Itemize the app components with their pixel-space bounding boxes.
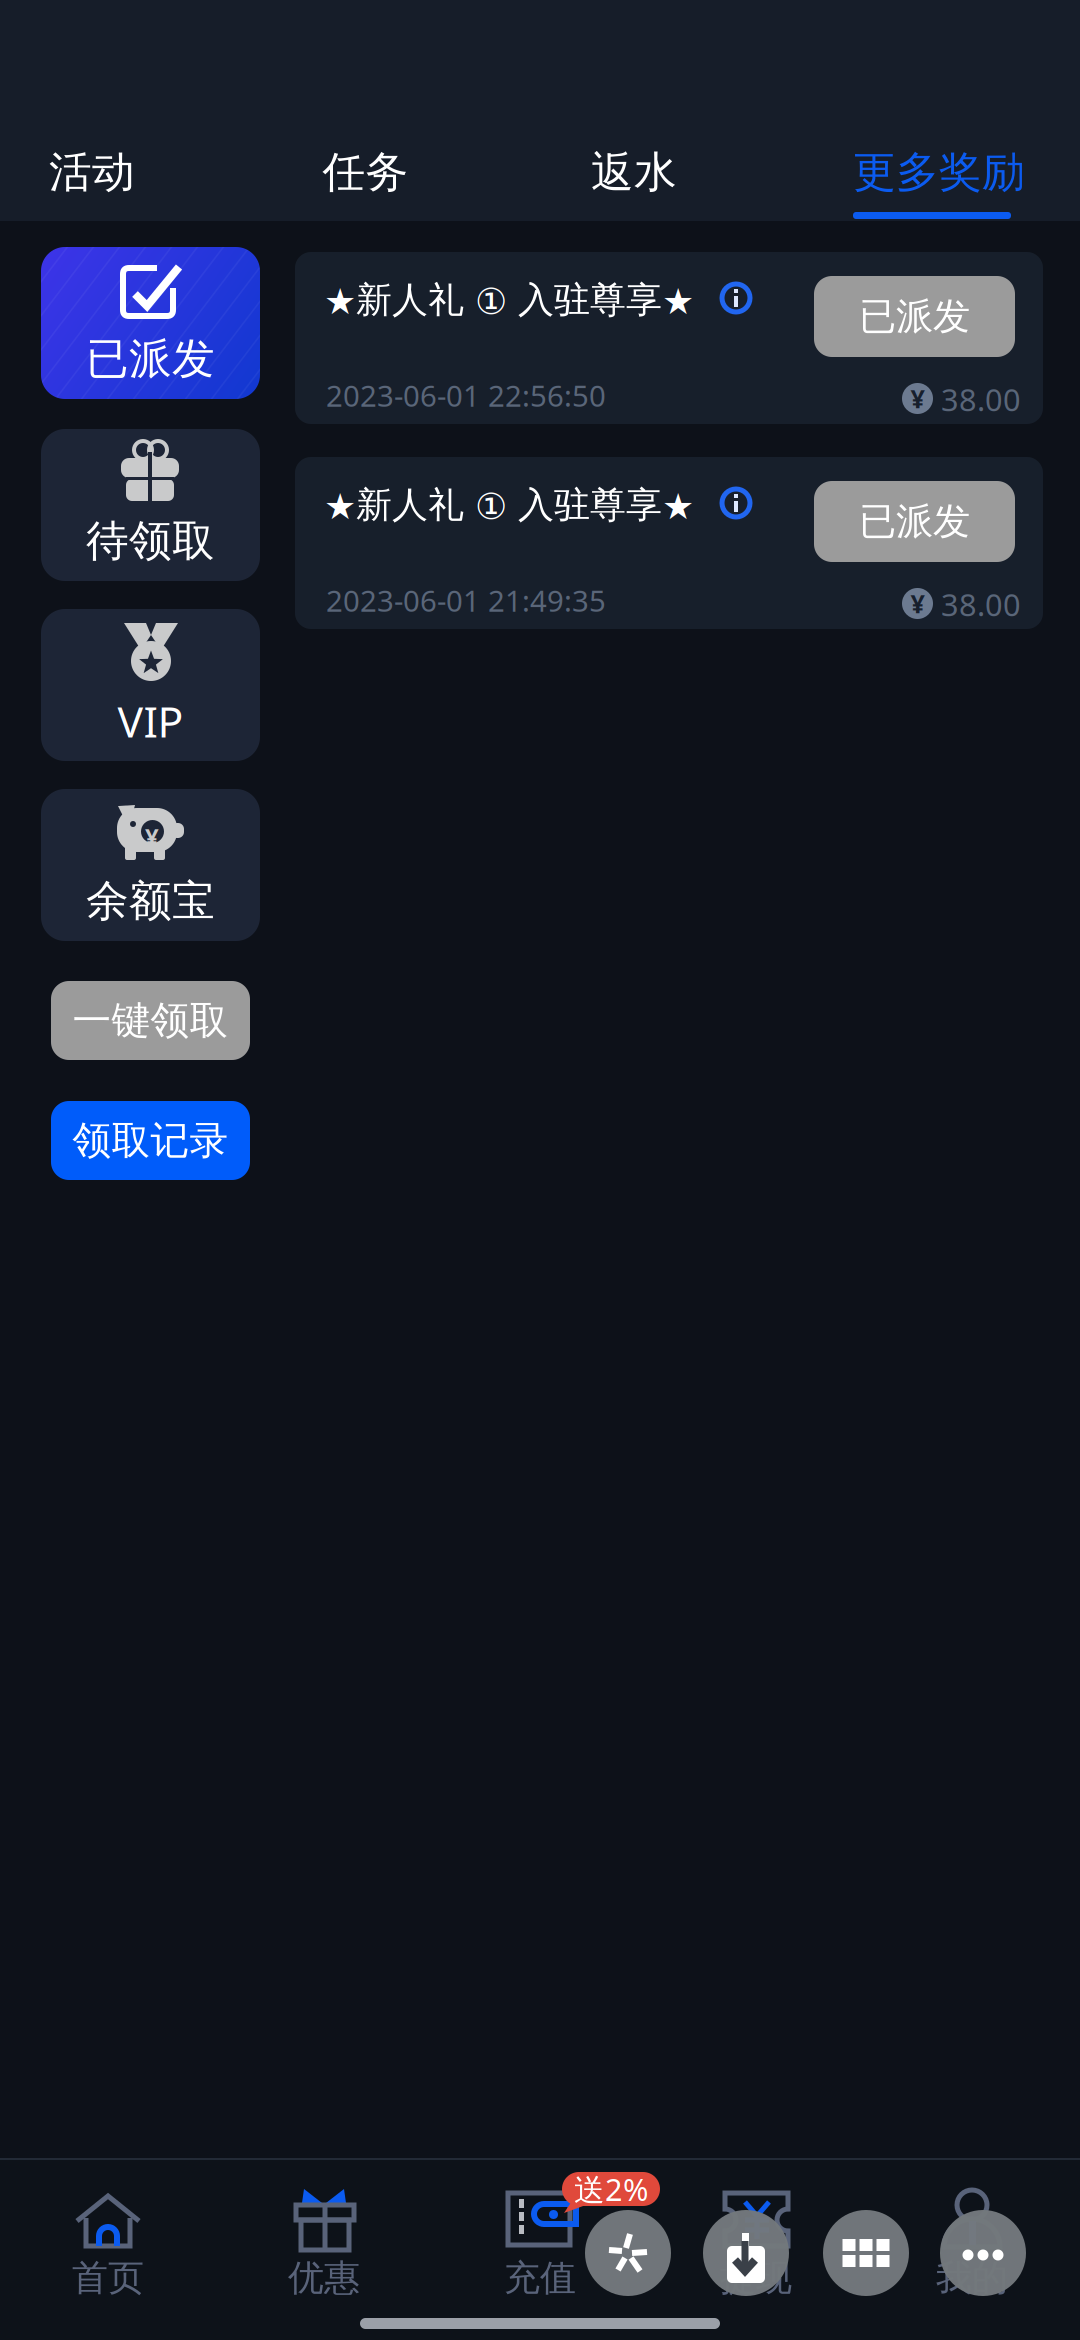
staticText: 已派发: [859, 499, 970, 544]
button[interactable]: ¥: [41, 789, 260, 941]
staticText: ★新人礼 ① 入驻尊享★: [324, 278, 694, 322]
button[interactable]: 优惠: [216, 2164, 432, 2314]
staticText: 提现: [720, 2256, 792, 2300]
button[interactable]: 已派发: [814, 276, 1015, 357]
staticText: ¥: [145, 821, 159, 853]
button[interactable]: 更多奖励: [860, 146, 1018, 220]
staticText: ¥: [910, 587, 924, 620]
button[interactable]: 领取记录: [51, 1101, 250, 1180]
staticText: 2023-06-01 21:49:35: [326, 581, 606, 620]
staticText: 38.00: [941, 584, 1021, 625]
staticText: 2023-06-01 22:56:50: [326, 376, 606, 415]
staticText: 更多奖励: [853, 146, 1025, 198]
button[interactable]: 我的: [864, 2164, 1080, 2314]
staticText: ¥: [910, 382, 924, 415]
staticText: 38.00: [941, 379, 1021, 420]
staticText: 已派发: [86, 333, 215, 385]
button[interactable]: 已派发: [814, 481, 1015, 562]
button[interactable]: Apps: [823, 2210, 909, 2296]
staticText: 首页: [72, 2256, 144, 2300]
button[interactable]: VIP: [41, 609, 260, 761]
staticText: 余额宝: [86, 875, 215, 927]
staticText: 我的: [936, 2256, 1008, 2300]
staticText: 任务: [322, 146, 408, 198]
staticText: 待领取: [86, 515, 215, 567]
staticText: 优惠: [288, 2256, 360, 2300]
button[interactable]: 已派发: [41, 247, 260, 399]
staticText: 已派发: [859, 294, 970, 339]
button[interactable]: Assistant: [585, 2210, 671, 2296]
staticText: 一键领取: [72, 997, 228, 1044]
staticText: 充值: [504, 2256, 576, 2300]
button[interactable]: 一键领取: [51, 981, 250, 1060]
button[interactable]: More: [940, 2210, 1026, 2296]
staticText: ★新人礼 ① 入驻尊享★: [324, 483, 694, 527]
button[interactable]: 首页: [0, 2164, 216, 2314]
staticText: 领取记录: [72, 1117, 228, 1164]
button[interactable]: 待领取: [41, 429, 260, 581]
button[interactable]: Download: [703, 2210, 789, 2296]
button[interactable]: 充值: [432, 2164, 648, 2314]
staticText: 活动: [49, 146, 135, 198]
staticText: 返水: [591, 146, 677, 198]
button[interactable]: 返水: [591, 146, 677, 220]
staticText: VIP: [117, 693, 183, 749]
button[interactable]: 任务: [323, 146, 408, 220]
button[interactable]: 提现: [648, 2164, 864, 2314]
staticText: 送2%: [574, 2169, 648, 2209]
button[interactable]: 活动: [52, 146, 132, 220]
